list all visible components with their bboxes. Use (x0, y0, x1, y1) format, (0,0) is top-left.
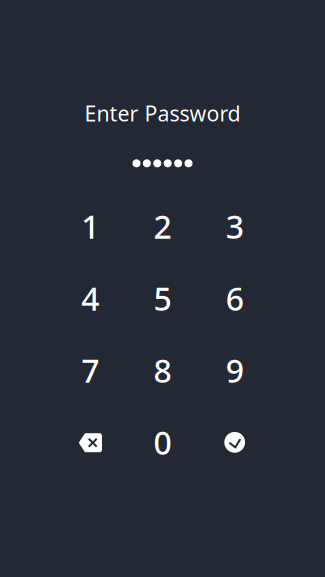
button[interactable]: 3 (199, 190, 271, 262)
staticText: 6 (226, 277, 244, 320)
button[interactable]: 4 (54, 262, 126, 334)
staticText: 5 (153, 277, 171, 320)
staticText: Enter Password (84, 99, 240, 127)
staticText: 2 (153, 205, 171, 248)
button[interactable]: 8 (126, 334, 199, 406)
button[interactable]: 7 (54, 334, 126, 406)
staticText: 3 (226, 205, 244, 248)
staticText: 9 (226, 349, 244, 392)
button[interactable]: 5 (126, 262, 199, 334)
staticText: 0 (153, 421, 171, 464)
button[interactable]: Delete (54, 406, 126, 478)
staticText: 8 (153, 349, 171, 392)
staticText: 4 (81, 277, 99, 320)
staticText: 1 (81, 205, 99, 248)
button[interactable]: 2 (126, 190, 199, 262)
button[interactable]: Confirm (199, 406, 271, 478)
button[interactable]: 0 (126, 406, 199, 478)
button[interactable]: 6 (199, 262, 271, 334)
button[interactable]: 9 (199, 334, 271, 406)
staticText: 7 (81, 349, 99, 392)
button[interactable]: 1 (54, 190, 126, 262)
